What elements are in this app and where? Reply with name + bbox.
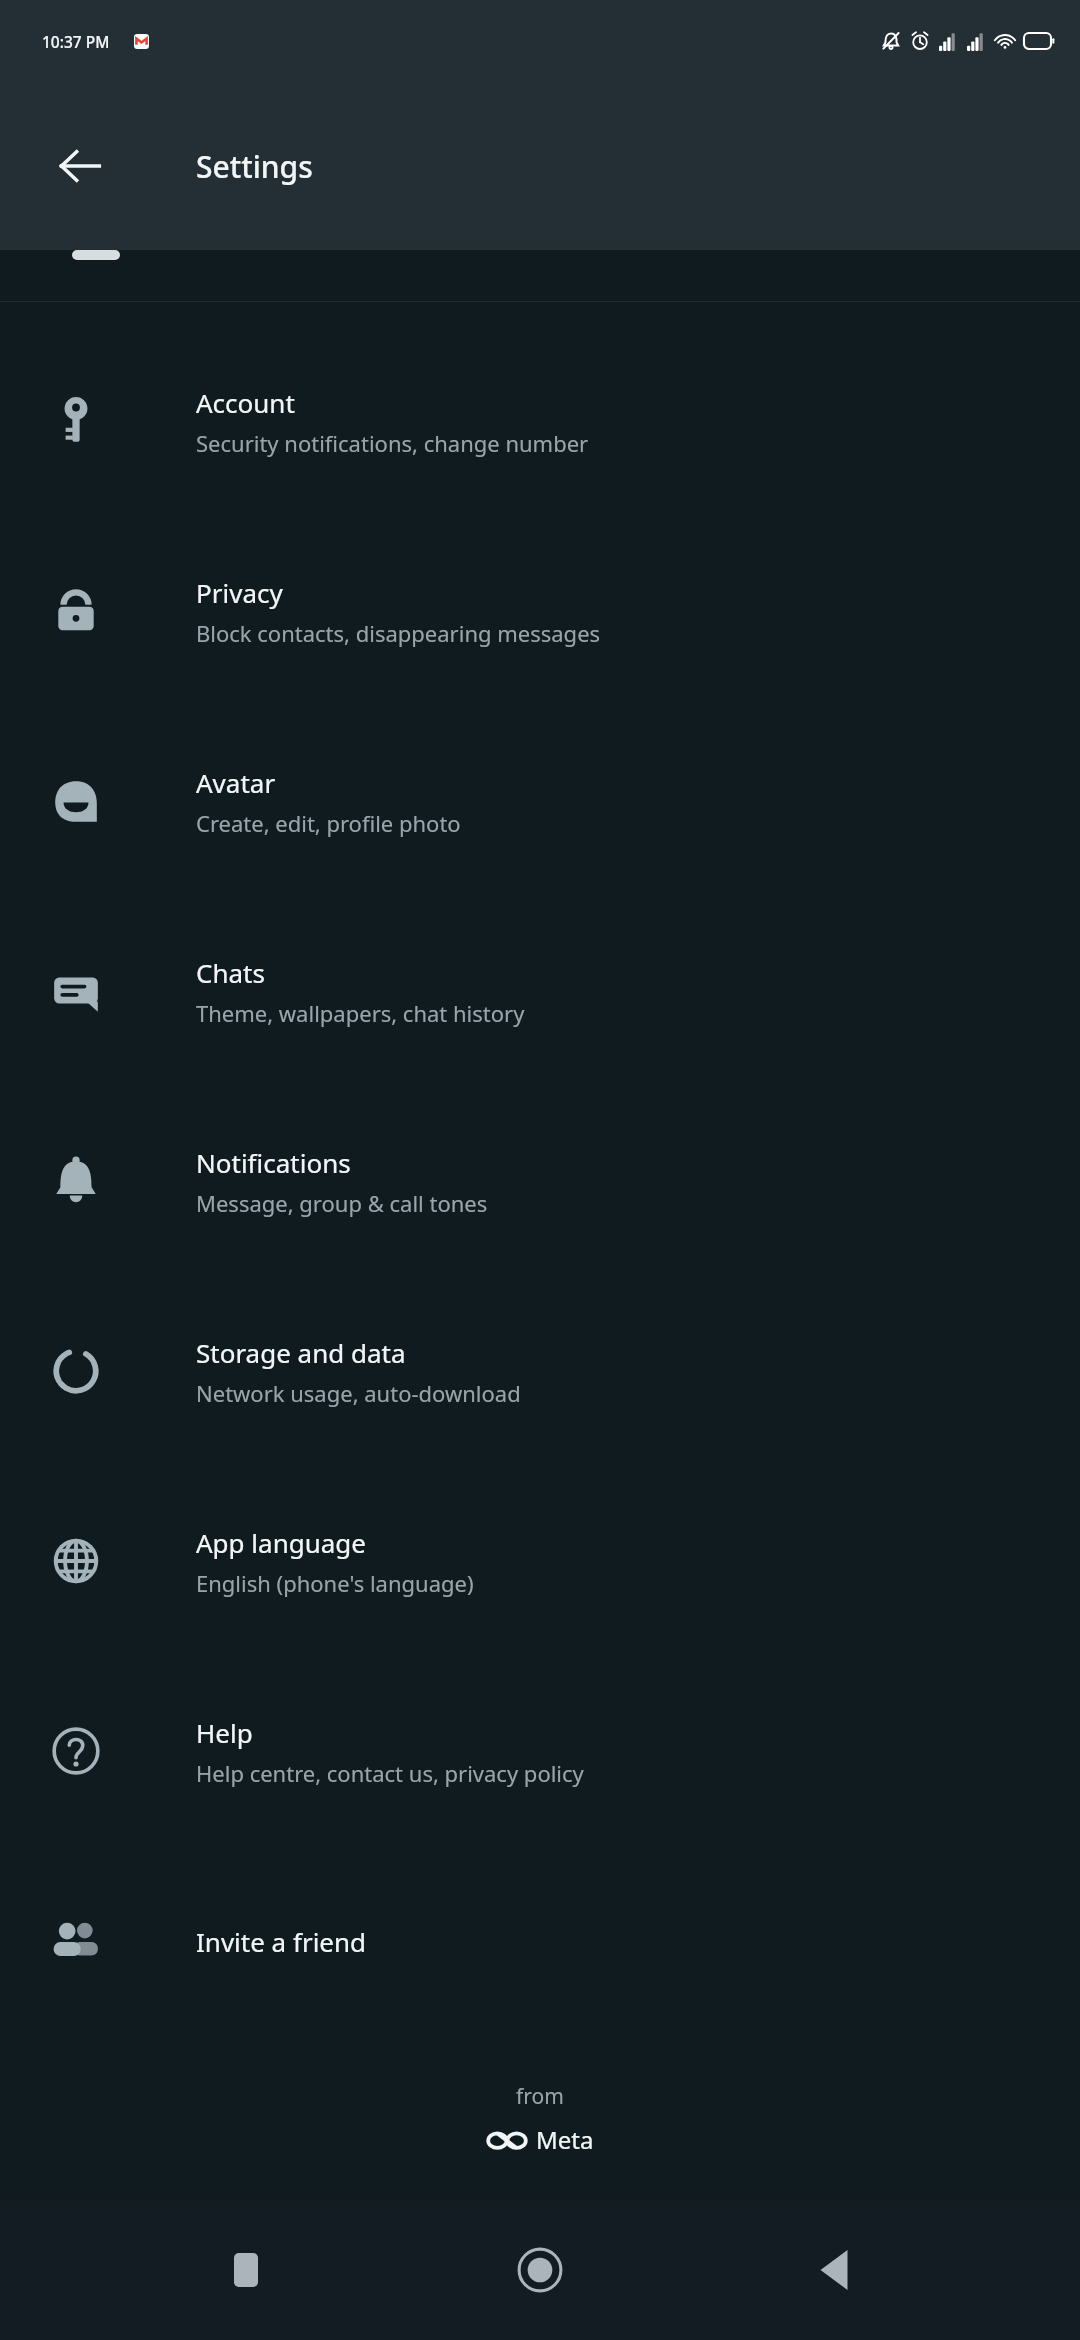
- staticText: Avatar: [196, 765, 276, 800]
- staticText: from: [516, 2082, 564, 2111]
- staticText: Account: [196, 385, 295, 420]
- button[interactable]: Back: [28, 114, 132, 218]
- staticText: Help centre, contact us, privacy policy: [196, 1758, 584, 1788]
- staticText: Meta: [536, 2123, 594, 2156]
- button[interactable]: App language: [0, 1466, 1080, 1656]
- button[interactable]: Invite a friend: [0, 1846, 1080, 2036]
- staticText: English (phone's language): [196, 1568, 474, 1598]
- button[interactable]: Privacy: [0, 516, 1080, 706]
- button[interactable]: Home: [492, 2222, 588, 2318]
- button[interactable]: Storage and data: [0, 1276, 1080, 1466]
- button[interactable]: Avatar: [0, 706, 1080, 896]
- staticText: Create, edit, profile photo: [196, 808, 461, 838]
- staticText: Storage and data: [196, 1335, 406, 1370]
- staticText: Block contacts, disappearing messages: [196, 618, 601, 648]
- staticText: 10:37 PM: [42, 31, 110, 52]
- staticText: Invite a friend: [196, 1924, 367, 1959]
- staticText: Theme, wallpapers, chat history: [196, 998, 525, 1028]
- staticText: Chats: [196, 955, 265, 990]
- button[interactable]: Back: [786, 2222, 882, 2318]
- staticText: Settings: [196, 146, 313, 187]
- staticText: App language: [196, 1525, 367, 1560]
- staticText: Message, group & call tones: [196, 1188, 488, 1218]
- staticText: Notifications: [196, 1145, 351, 1180]
- button[interactable]: Help: [0, 1656, 1080, 1846]
- button[interactable]: Notifications: [0, 1086, 1080, 1276]
- staticText: Help: [196, 1715, 253, 1750]
- button[interactable]: Recents: [198, 2222, 294, 2318]
- button[interactable]: Account: [0, 326, 1080, 516]
- staticText: Network usage, auto-download: [196, 1378, 521, 1408]
- button[interactable]: Chats: [0, 896, 1080, 1086]
- staticText: Security notifications, change number: [196, 428, 589, 458]
- staticText: Privacy: [196, 575, 283, 610]
